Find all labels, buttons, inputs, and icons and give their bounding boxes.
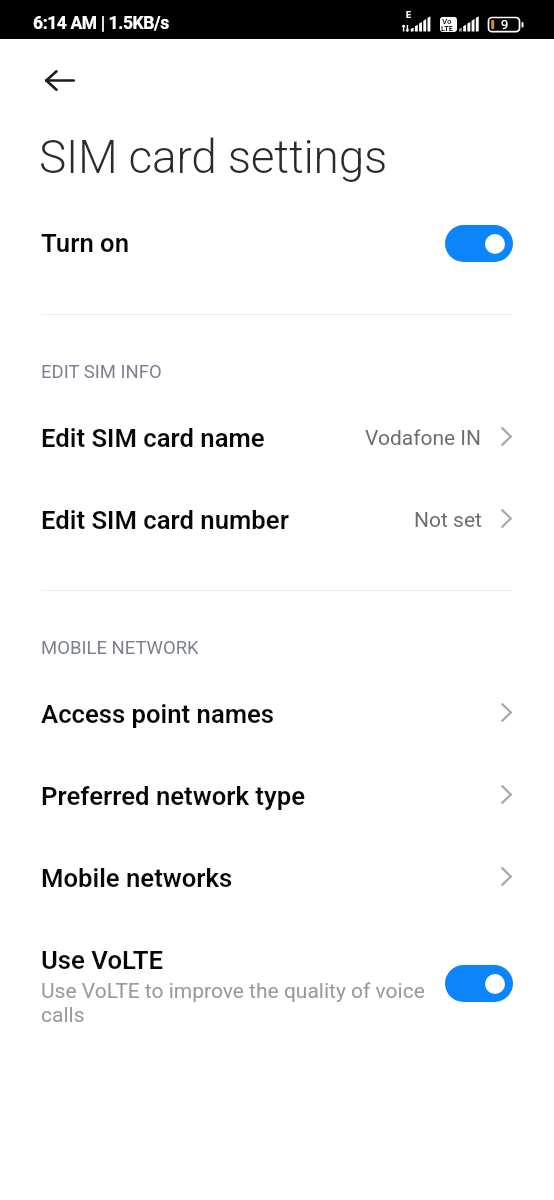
staticText: 9	[501, 17, 509, 32]
button[interactable]: Back	[33, 54, 86, 107]
staticText: EDIT SIM INFO	[41, 361, 162, 383]
button[interactable]: Use VoLTE	[0, 931, 554, 1027]
button[interactable]: Edit SIM card name	[0, 407, 554, 469]
staticText: SIM card settings	[39, 130, 388, 184]
button[interactable]: Access point names	[0, 683, 554, 745]
button[interactable]: Use VoLTE, on	[445, 965, 513, 1002]
staticText: Mobile networks	[41, 863, 233, 893]
staticText: LTE	[441, 24, 454, 32]
button[interactable]: Preferred network type	[0, 765, 554, 827]
staticText: Not set	[414, 508, 482, 533]
staticText: MOBILE NETWORK	[41, 637, 199, 659]
staticText: Turn on	[41, 228, 129, 258]
staticText: Use VoLTE to improve the quality of voic…	[41, 979, 431, 1027]
button[interactable]: Edit SIM card number	[0, 489, 554, 551]
staticText: Vodafone IN	[365, 426, 482, 451]
button[interactable]: Turn on	[0, 213, 554, 273]
button[interactable]: Mobile networks	[0, 847, 554, 909]
staticText: Edit SIM card number	[41, 505, 289, 535]
staticText: Use VoLTE	[41, 945, 164, 975]
staticText: Vo	[442, 17, 452, 26]
staticText: Edit SIM card name	[41, 423, 265, 453]
staticText: 6:14 AM | 1.5KB/s	[33, 13, 169, 34]
staticText: Preferred network type	[41, 781, 306, 811]
staticText: Access point names	[41, 699, 275, 729]
staticText: E	[406, 10, 412, 21]
button[interactable]: Turn on SIM, on	[445, 225, 513, 262]
